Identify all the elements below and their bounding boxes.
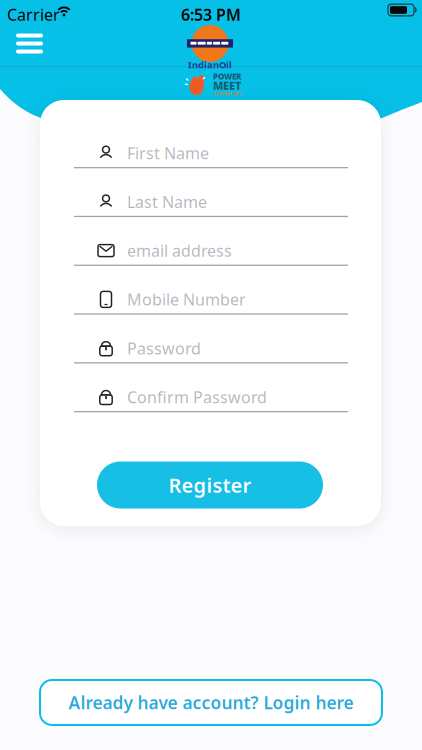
button[interactable]: Already have account? Login here	[40, 680, 382, 725]
staticText: email address	[127, 240, 232, 261]
staticText: Carrier	[7, 4, 60, 25]
staticText: Password	[127, 338, 201, 359]
staticText: Last Name	[127, 191, 207, 212]
staticText: Confirm Password	[127, 386, 267, 408]
staticText: First Name	[127, 142, 209, 164]
staticText: POWER	[213, 71, 241, 82]
button[interactable]: Register	[97, 461, 323, 508]
staticText: CHENNAI 2019	[213, 90, 241, 96]
button[interactable]: Menu	[16, 34, 43, 53]
staticText: Already have account? Login here	[68, 691, 353, 714]
staticText: IndianOil	[188, 58, 232, 71]
staticText: MEET	[213, 78, 241, 93]
staticText: Register	[168, 472, 251, 498]
staticText: 6:53 PM	[181, 4, 241, 25]
staticText: Mobile Number	[127, 289, 246, 310]
